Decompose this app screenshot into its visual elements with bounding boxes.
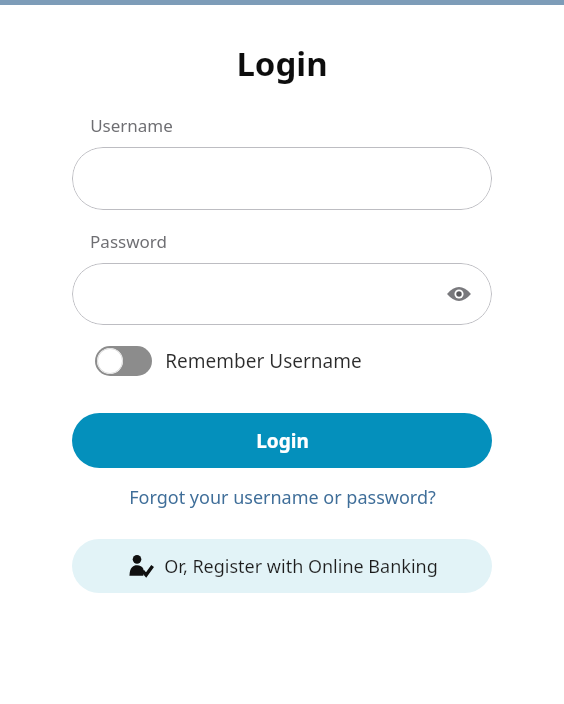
button[interactable]: Username input field: [72, 147, 492, 210]
staticText: Login: [256, 428, 309, 454]
button[interactable]: Or, Register with Online Banking: [72, 539, 492, 593]
staticText: Remember Username: [165, 348, 362, 374]
button[interactable]: Login: [72, 413, 492, 468]
staticText: Login: [236, 41, 328, 86]
button[interactable]: Forgot your username or password?: [121, 480, 444, 515]
staticText: Or, Register with Online Banking: [164, 554, 438, 579]
button[interactable]: Password input field: [72, 263, 492, 325]
staticText: Username: [90, 114, 173, 137]
staticText: Password: [90, 230, 167, 253]
button[interactable]: Remember Username: [95, 346, 362, 376]
button[interactable]: Show password: [442, 277, 476, 311]
staticText: Forgot your username or password?: [129, 485, 436, 510]
